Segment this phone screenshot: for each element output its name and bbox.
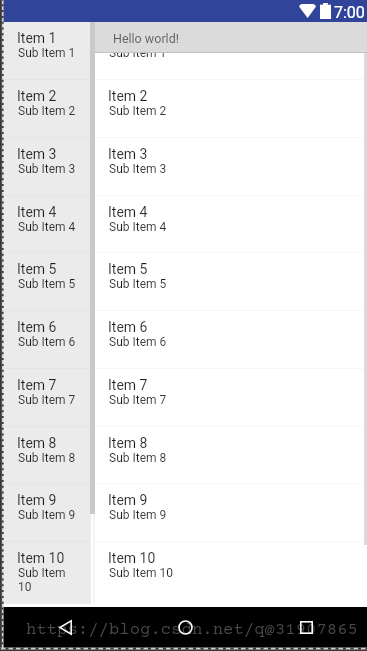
button[interactable]: Back: [48, 610, 82, 644]
staticText: Sub Item 4: [18, 220, 80, 234]
staticText: Item 3: [108, 146, 148, 162]
staticText: Sub Item 9: [18, 508, 80, 522]
staticText: Item 8: [108, 435, 148, 451]
staticText: Item 9: [108, 492, 148, 508]
staticText: Sub Item 7: [109, 393, 167, 407]
staticText: Item 6: [108, 319, 148, 335]
button[interactable]: Item 7: [4, 368, 91, 426]
staticText: Sub Item 1: [109, 46, 167, 60]
staticText: Sub Item 4: [109, 220, 167, 234]
button[interactable]: Item 5: [95, 252, 367, 310]
staticText: Item 3: [17, 146, 57, 162]
button[interactable]: Item 10: [4, 541, 91, 599]
button[interactable]: Item 7: [95, 368, 367, 426]
staticText: Item 10: [108, 550, 156, 566]
staticText: Item 1: [17, 30, 57, 46]
staticText: Sub Item 5: [18, 277, 80, 291]
staticText: Item 8: [17, 435, 57, 451]
staticText: Hello world!: [113, 31, 179, 46]
staticText: Sub Item 10: [109, 566, 173, 580]
button[interactable]: Item 2: [4, 79, 91, 137]
button[interactable]: Item 4: [4, 195, 91, 253]
staticText: Sub Item 3: [18, 162, 80, 176]
staticText: Item 5: [17, 261, 57, 277]
staticText: Sub Item 6: [109, 335, 167, 349]
staticText: Sub Item 7: [18, 393, 80, 407]
staticText: Sub Item 5: [109, 277, 167, 291]
button[interactable]: Item 1: [4, 21, 91, 79]
button[interactable]: Item 9: [95, 483, 367, 541]
button[interactable]: Item 3: [4, 137, 91, 195]
staticText: Item 7: [17, 377, 57, 393]
staticText: Item 2: [108, 88, 148, 104]
button[interactable]: Item 9: [4, 483, 91, 541]
button[interactable]: Home: [168, 610, 202, 644]
button[interactable]: Item 4: [95, 195, 367, 253]
button[interactable]: Item 6: [95, 310, 367, 368]
staticText: Item 2: [17, 88, 57, 104]
staticText: Item 1: [108, 30, 148, 46]
button[interactable]: Recent apps: [289, 610, 323, 644]
staticText: Item 5: [108, 261, 148, 277]
button[interactable]: Item 3: [95, 137, 367, 195]
staticText: Sub Item 9: [109, 508, 167, 522]
staticText: Sub Item 1: [18, 46, 80, 60]
button[interactable]: Item 2: [95, 79, 367, 137]
staticText: Item 7: [108, 377, 148, 393]
staticText: Item 4: [108, 204, 148, 220]
staticText: Sub Item 6: [18, 335, 80, 349]
staticText: Sub Item 10: [18, 566, 80, 594]
staticText: Item 6: [17, 319, 57, 335]
staticText: Sub Item 2: [18, 104, 80, 118]
button[interactable]: Item 8: [4, 426, 91, 484]
staticText: Sub Item 2: [109, 104, 167, 118]
staticText: Item 4: [17, 204, 57, 220]
button[interactable]: Item 6: [4, 310, 91, 368]
staticText: 7:00: [334, 3, 365, 22]
button[interactable]: Item 5: [4, 252, 91, 310]
staticText: Sub Item 8: [18, 451, 80, 465]
button[interactable]: Item 8: [95, 426, 367, 484]
staticText: https://blog.csdn.net/q@31907865: [26, 620, 358, 639]
staticText: Item 9: [17, 492, 57, 508]
staticText: Item 10: [17, 550, 65, 566]
button[interactable]: Item 10: [95, 541, 367, 599]
staticText: Sub Item 3: [109, 162, 167, 176]
button[interactable]: Item 1: [95, 21, 367, 79]
staticText: Sub Item 8: [109, 451, 167, 465]
